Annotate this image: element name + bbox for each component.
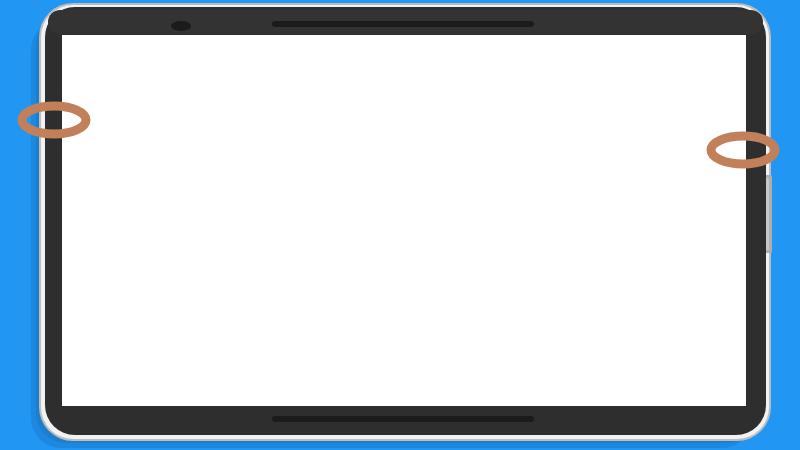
- button[interactable]: Tablet device illustration: [0, 0, 800, 450]
